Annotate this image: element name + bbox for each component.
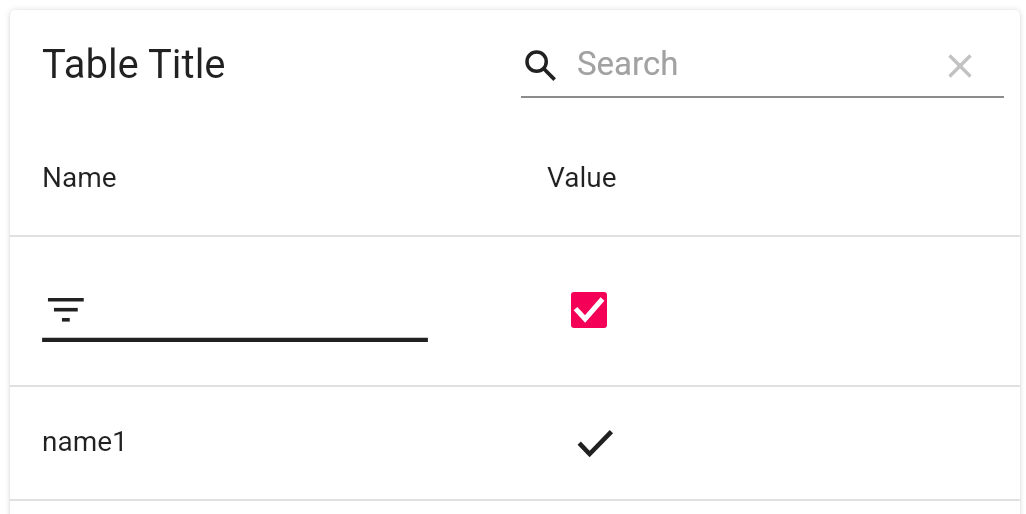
button[interactable]: Clear search [940, 46, 980, 86]
other: Checked [571, 418, 619, 466]
button[interactable]: Filter by name [42, 294, 428, 342]
staticText: name1 [42, 425, 128, 458]
staticText: Table Title [42, 41, 226, 88]
staticText: Search [577, 44, 679, 83]
button[interactable]: Search table [520, 34, 920, 98]
button[interactable]: Value, checked [571, 292, 607, 328]
staticText: Name [42, 161, 117, 194]
button[interactable]: name1 [10, 387, 1020, 499]
staticText: Value [547, 161, 617, 194]
